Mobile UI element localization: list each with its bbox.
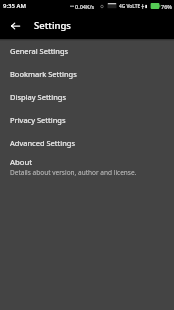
staticText: Advanced Settings bbox=[10, 138, 75, 148]
staticText: 0.04K/s bbox=[75, 3, 95, 10]
button[interactable]: Display Settings bbox=[0, 85, 174, 108]
button[interactable]: General Settings bbox=[0, 39, 174, 62]
button[interactable]: Privacy Settings bbox=[0, 108, 174, 131]
button[interactable]: Bookmark Settings bbox=[0, 62, 174, 85]
button[interactable]: Advanced Settings bbox=[0, 131, 174, 154]
staticText: Bookmark Settings bbox=[10, 69, 77, 79]
button[interactable]: About bbox=[0, 154, 174, 176]
staticText: General Settings bbox=[10, 46, 69, 56]
staticText: 9:35 AM bbox=[3, 2, 26, 10]
staticText: 4G VoLTE bbox=[119, 3, 141, 10]
staticText: Privacy Settings bbox=[10, 115, 66, 125]
staticText: Details about version, author and licens… bbox=[10, 168, 137, 176]
staticText: 76% bbox=[161, 3, 172, 10]
staticText: About bbox=[10, 157, 33, 168]
staticText: Settings bbox=[34, 19, 71, 32]
staticText: Display Settings bbox=[10, 92, 67, 102]
button[interactable]: Navigate up bbox=[3, 14, 27, 38]
